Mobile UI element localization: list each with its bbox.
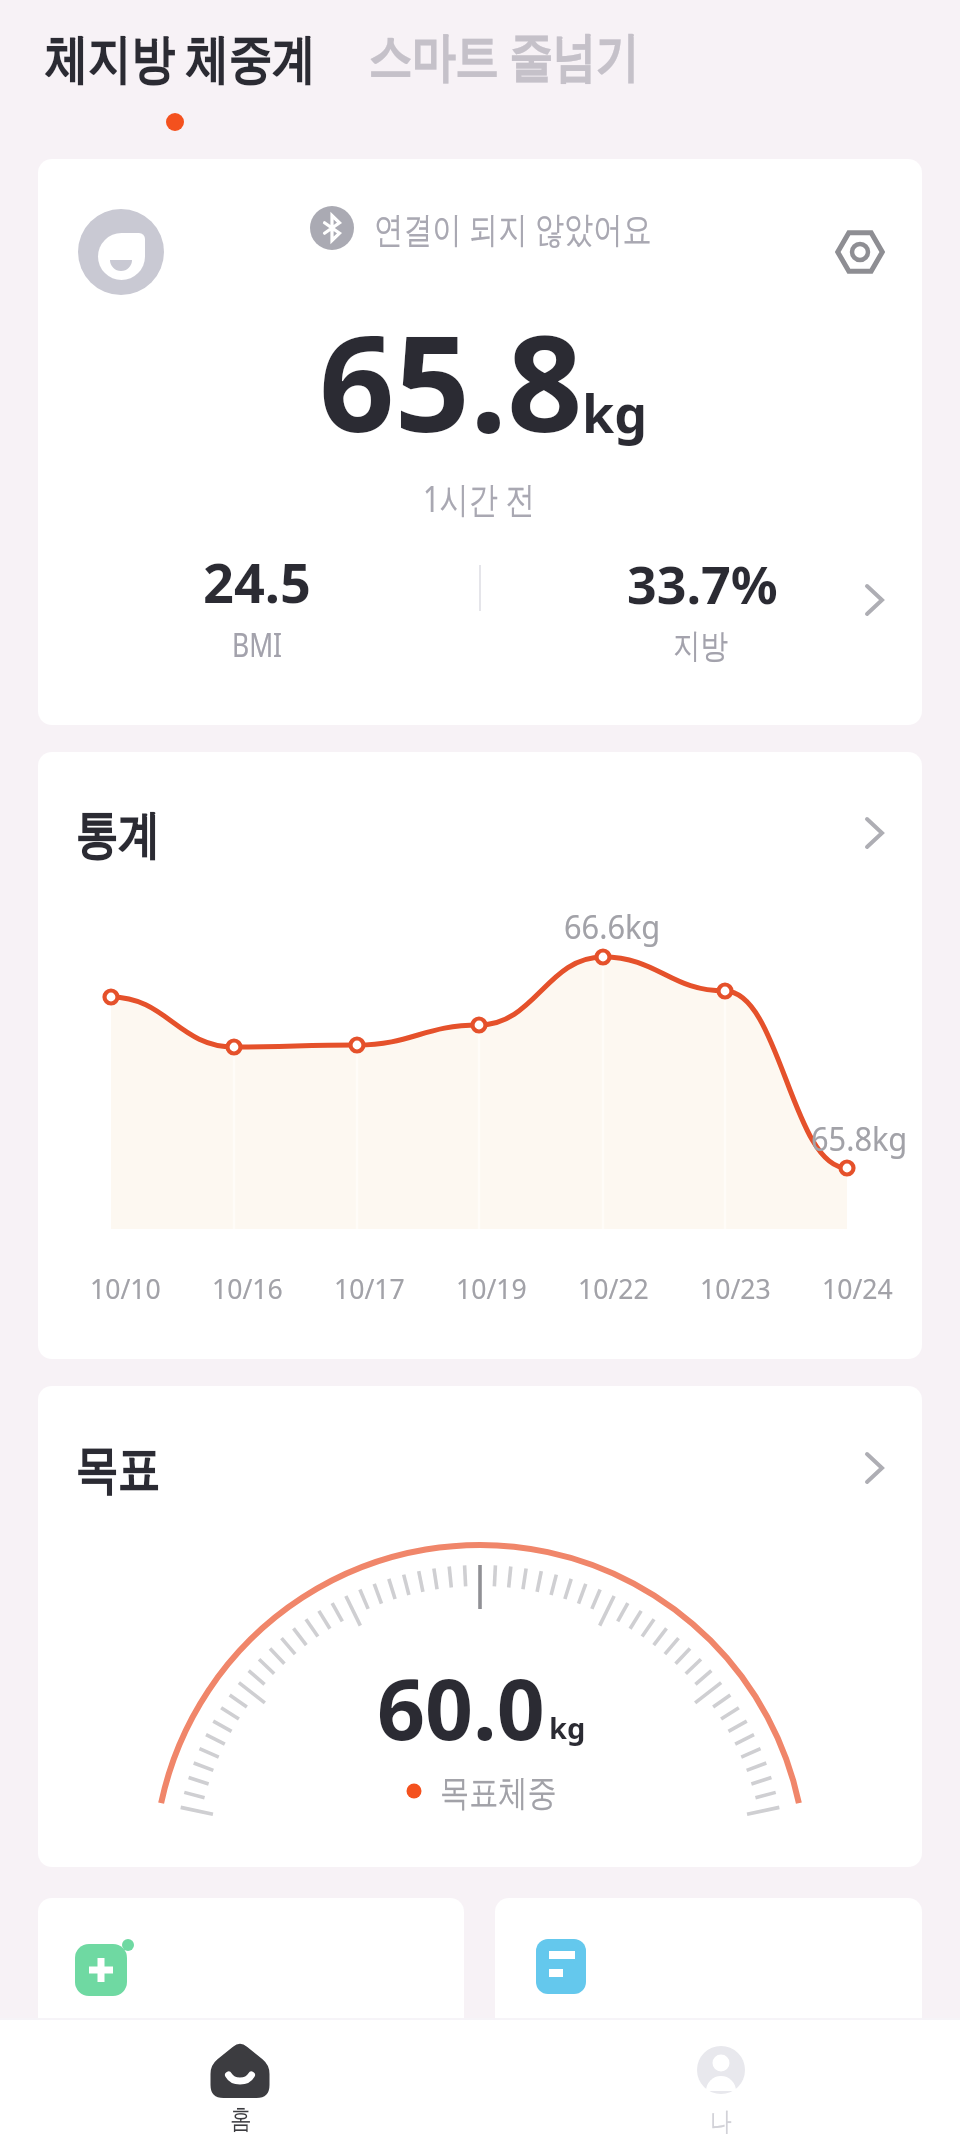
button[interactable]: 홈 (0, 2020, 480, 2151)
staticText: 10/23 (700, 1269, 771, 1307)
staticText: 10/19 (456, 1269, 527, 1307)
staticText: 나 (710, 2105, 732, 2139)
button[interactable]: 나 (480, 2020, 960, 2151)
staticText: 60.0 (377, 1650, 545, 1764)
staticText: 10/10 (90, 1269, 161, 1307)
staticText: 연결이 되지 않았어요 (374, 204, 652, 253)
staticText: kg (549, 1708, 586, 1747)
staticText: 통계 (75, 803, 159, 869)
staticText: 10/17 (334, 1269, 405, 1307)
staticText: 체지방 체중계 (44, 21, 315, 93)
staticText: 지방 (673, 625, 728, 668)
button[interactable]: 스마트 줄넘기 (352, 8, 698, 104)
button[interactable]: 설정 (832, 224, 888, 280)
staticText: 33.7% (627, 548, 778, 619)
staticText: 66.6kg (564, 905, 661, 949)
button[interactable]: 리포트 (495, 1898, 922, 2098)
staticText: 24.5 (203, 545, 311, 619)
button[interactable]: 설정 (38, 159, 922, 725)
staticText: 1시간 전 (423, 474, 535, 523)
staticText: 65.8kg (811, 1117, 908, 1161)
button[interactable]: 식단 기록 (38, 1898, 464, 2098)
staticText: 홈 (230, 2102, 252, 2136)
button[interactable]: 프로필 (78, 209, 164, 295)
staticText: BMI (232, 622, 282, 667)
staticText: kg (582, 377, 648, 448)
staticText: 10/22 (578, 1269, 649, 1307)
button[interactable]: 목표 (38, 1386, 922, 1867)
staticText: 65.8 (319, 291, 583, 471)
staticText: 목표 (75, 1438, 159, 1504)
staticText: 10/16 (212, 1269, 283, 1307)
button[interactable]: 체지방 체중계 (24, 8, 370, 104)
button[interactable]: 통계 (38, 752, 922, 1359)
staticText: 목표체중 (440, 1770, 557, 1815)
staticText: 10/24 (822, 1269, 893, 1307)
staticText: 스마트 줄넘기 (368, 19, 639, 91)
